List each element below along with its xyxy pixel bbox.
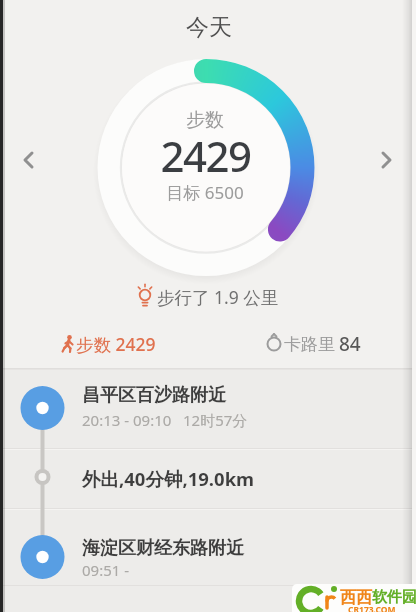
staticText: 步行了 1.9 公里 (157, 285, 279, 309)
staticText: 昌平区百沙路附近 (82, 384, 226, 407)
staticText: 西西 (340, 588, 372, 608)
button[interactable] (0, 370, 416, 448)
staticText: 外出,40分钟,19.0km (82, 466, 255, 491)
staticText: CR173.COM (348, 604, 396, 612)
staticText: 目标 6500 (166, 181, 244, 204)
button[interactable] (368, 140, 408, 180)
staticText: 84 (339, 331, 361, 357)
button[interactable] (0, 450, 416, 508)
staticText: 09:51 - (82, 560, 130, 580)
staticText: 卡路里 (284, 334, 335, 355)
staticText: 20:13 - 09:10 12时57分 (82, 410, 248, 430)
staticText: 今天 (186, 13, 232, 42)
staticText: 2429 (160, 127, 251, 184)
button[interactable] (262, 328, 372, 360)
button[interactable] (0, 510, 416, 586)
staticText: 海淀区财经东路附近 (82, 537, 244, 560)
staticText: 步数 2429 (76, 332, 156, 356)
staticText: 步数 (186, 108, 224, 132)
button[interactable] (10, 140, 50, 180)
staticText: 软件园 (372, 588, 416, 607)
button[interactable] (55, 328, 165, 360)
button[interactable] (292, 584, 416, 612)
